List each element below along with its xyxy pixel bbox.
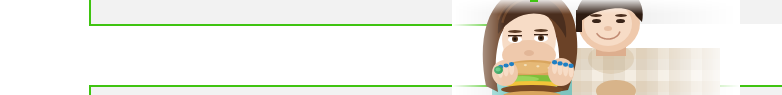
button[interactable]: Header banner with photo xyxy=(0,0,782,95)
